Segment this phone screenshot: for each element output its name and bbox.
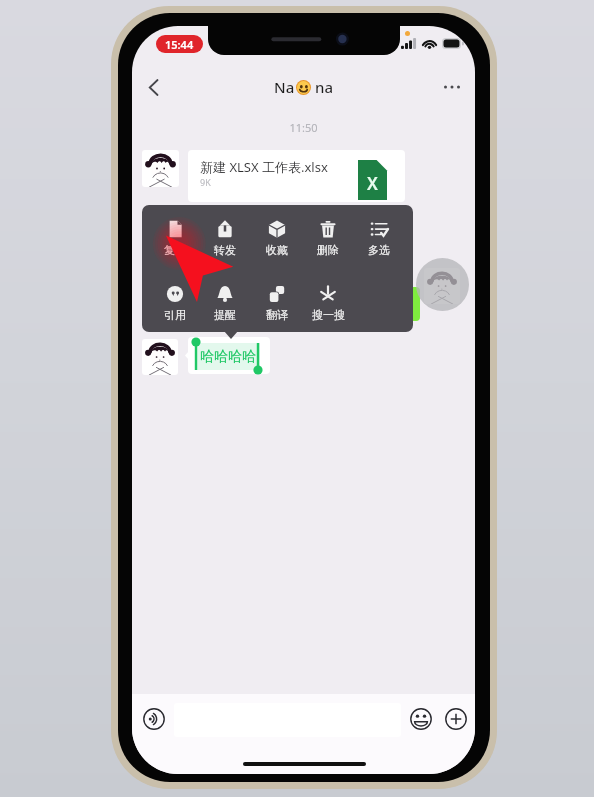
button[interactable]: 收藏 [253, 220, 301, 257]
staticText: 收藏 [266, 243, 288, 257]
staticText: 搜一搜 [312, 308, 345, 322]
button[interactable]: 引用 [151, 285, 199, 322]
button[interactable]: Back [138, 70, 168, 104]
staticText: 转发 [214, 243, 236, 257]
button[interactable]: Avatar [142, 339, 178, 375]
button[interactable]: Emoji [409, 707, 433, 731]
button[interactable]: 复制 [151, 220, 199, 257]
staticText: 15:44 [165, 37, 194, 52]
button[interactable]: 搜一搜 [304, 285, 352, 322]
staticText: 复制 [164, 243, 186, 257]
button[interactable]: Voice input [142, 707, 166, 731]
button[interactable] [188, 337, 270, 374]
staticText: 提醒 [214, 308, 236, 322]
button[interactable]: 删除 [304, 220, 352, 257]
staticText: 9K [200, 176, 211, 188]
button[interactable]: 提醒 [201, 285, 249, 322]
staticText: na [315, 77, 333, 97]
staticText: Na [274, 77, 295, 97]
staticText: 翻译 [266, 308, 288, 322]
button[interactable]: Avatar [142, 150, 179, 187]
button[interactable]: 多选 [355, 220, 403, 257]
button[interactable]: 转发 [201, 220, 249, 257]
staticText: 引用 [164, 308, 186, 322]
button[interactable]: 新建 XLSX 工作表.xlsx [188, 150, 405, 202]
staticText: X [367, 172, 378, 195]
button[interactable]: More [444, 707, 468, 731]
button[interactable]: 翻译 [253, 285, 301, 322]
staticText: 删除 [317, 243, 339, 257]
button[interactable]: More options [437, 70, 467, 104]
staticText: 11:50 [132, 120, 475, 135]
staticText: 多选 [368, 243, 390, 257]
button[interactable]: Avatar [424, 268, 460, 304]
staticText: 哈哈哈哈 [200, 348, 256, 366]
staticText: 新建 XLSX 工作表.xlsx [200, 158, 328, 176]
